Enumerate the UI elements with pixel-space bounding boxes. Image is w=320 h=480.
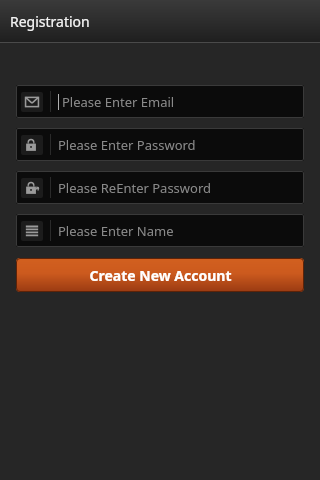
staticText: Please Enter Password [58,136,196,154]
staticText: Please ReEnter Password [58,179,212,197]
button[interactable]: Password [16,128,304,161]
staticText: Registration [10,12,90,31]
other: Re-enter password [21,178,43,198]
button[interactable]: Create New Account [16,258,304,292]
staticText: Create New Account [89,266,232,285]
button[interactable]: Re-enter password [16,171,304,204]
button[interactable]: Name [16,214,304,247]
other: Name [21,221,43,241]
other: Email [21,92,43,112]
other: Password [21,135,43,155]
staticText: Please Enter Email [62,93,175,111]
staticText: Please Enter Name [58,222,174,240]
button[interactable]: Email [16,85,304,118]
